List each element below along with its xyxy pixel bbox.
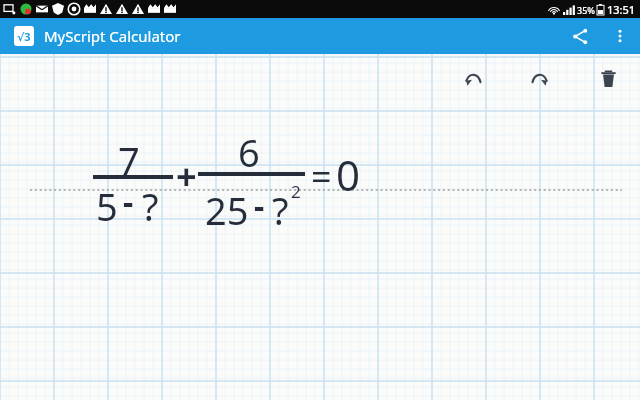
staticText: 2 <box>291 180 301 203</box>
button[interactable]: More options <box>600 18 640 54</box>
staticText: √3 <box>17 29 31 44</box>
staticText: 35% <box>577 4 595 16</box>
staticText: 7 <box>118 134 140 186</box>
button[interactable]: Undo <box>450 56 494 100</box>
staticText: + <box>176 152 197 201</box>
staticText: - <box>254 184 265 228</box>
staticText: MyScript Calculator <box>44 26 181 46</box>
button[interactable]: Share <box>560 18 600 54</box>
staticText: ? <box>272 184 289 236</box>
staticText: ? <box>142 180 159 232</box>
staticText: 6 <box>238 126 260 178</box>
staticText: 0 <box>336 146 361 203</box>
staticText: = <box>311 152 332 201</box>
staticText: 13:51 <box>607 2 636 17</box>
staticText: - <box>123 180 134 224</box>
button[interactable]: Delete <box>586 56 630 100</box>
button[interactable]: Redo <box>518 56 562 100</box>
staticText: 5 <box>96 180 118 232</box>
staticText: 25 <box>205 184 249 236</box>
